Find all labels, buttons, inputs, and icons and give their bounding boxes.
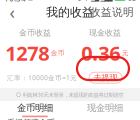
- staticText: 我的收益: [46, 5, 94, 20]
- staticText: 98: [128, 0, 136, 3]
- staticText: 现金明细: [87, 102, 123, 114]
- staticText: 金币: [51, 49, 65, 57]
- staticText: 0.36: [81, 40, 120, 66]
- staticText: 金币收益: [19, 28, 51, 38]
- staticText: ▁▃▅: [100, 0, 112, 1]
- staticText: ‹: [9, 1, 14, 24]
- staticText: 现金收益: [89, 28, 121, 38]
- staticText: 汇率：10000金币=1元: [7, 73, 77, 82]
- button[interactable]: Back: [4, 4, 20, 20]
- staticText: 看视频赚金币: [7, 118, 55, 120]
- button[interactable]: 收益说明: [88, 4, 136, 20]
- staticText: ▁▃: [91, 0, 99, 1]
- button[interactable]: 金币明细: [0, 101, 70, 118]
- button[interactable]: 现金明细: [70, 101, 140, 118]
- staticText: 16:34: [4, 0, 26, 4]
- staticText: 1278: [5, 40, 49, 66]
- staticText: 金币明细: [17, 102, 53, 114]
- staticText: ✻: [83, 0, 89, 2]
- staticText: 利造林30天未登录，未提现的友益将过期清空: [22, 91, 123, 98]
- staticText: 去提现: [93, 73, 117, 83]
- button[interactable]: 去提现: [89, 72, 122, 83]
- staticText: 元: [122, 49, 129, 57]
- staticText: 收益说明: [90, 6, 134, 19]
